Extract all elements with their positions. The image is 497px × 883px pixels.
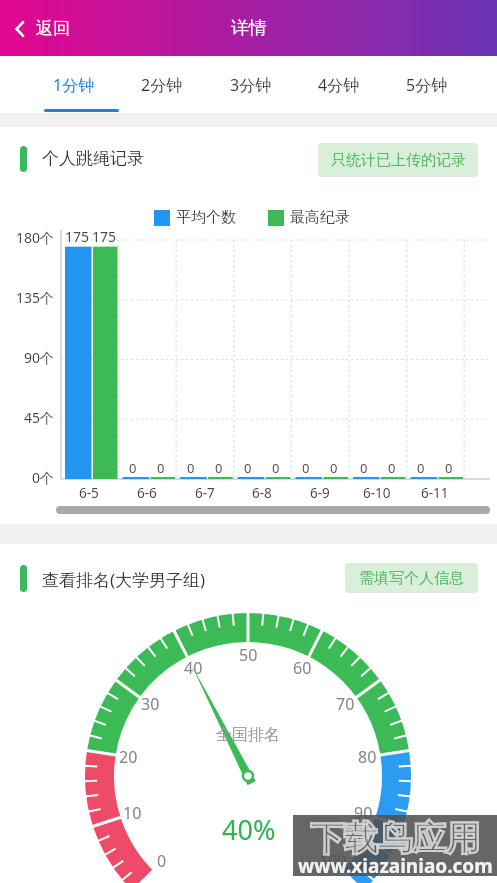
staticText: 3分钟 — [230, 74, 272, 96]
staticText: 4分钟 — [318, 74, 360, 96]
staticText: 详情 — [231, 17, 267, 40]
staticText: 80 — [358, 746, 377, 768]
staticText: 平均个数 — [176, 208, 236, 227]
staticText: 0 — [187, 459, 195, 477]
staticText: 2分钟 — [141, 74, 183, 96]
staticText: 180个 — [16, 228, 55, 247]
staticText: 只统计已上传的记录 — [331, 151, 466, 170]
button[interactable]: 2分钟 — [141, 74, 183, 96]
staticText: 0 — [417, 459, 425, 477]
staticText: 6-6 — [137, 484, 157, 502]
button[interactable]: 返回 — [12, 18, 70, 39]
staticText: 0 — [445, 459, 453, 477]
staticText: 最高纪录 — [290, 208, 350, 227]
staticText: 135个 — [16, 288, 55, 307]
button[interactable]: 1分钟 — [53, 74, 95, 96]
staticText: 0 — [157, 459, 165, 477]
staticText: 0 — [388, 459, 396, 477]
button[interactable]: 需填写个人信息 — [345, 563, 478, 593]
staticText: 10 — [123, 802, 142, 824]
staticText: 175 — [65, 227, 90, 246]
button[interactable]: 3分钟 — [230, 74, 272, 96]
staticText: 20 — [119, 746, 138, 768]
staticText: 0 — [360, 459, 368, 477]
staticText: 返回 — [36, 18, 70, 39]
staticText: 0 — [330, 459, 338, 477]
staticText: 0 — [244, 459, 252, 477]
staticText: 90个 — [24, 348, 55, 367]
staticText: 下载鸟应用 — [310, 817, 480, 859]
staticText: 100 — [319, 850, 347, 872]
staticText: 个人跳绳记录 — [42, 148, 144, 169]
staticText: 60 — [293, 657, 312, 679]
staticText: 90 — [354, 802, 373, 824]
staticText: 0 — [302, 459, 310, 477]
staticText: 0 — [157, 850, 167, 872]
staticText: 需填写个人信息 — [359, 569, 464, 588]
staticText: 0 — [272, 459, 280, 477]
staticText: 175 — [92, 227, 117, 246]
staticText: 0个 — [32, 468, 55, 487]
staticText: 50 — [239, 644, 258, 666]
staticText: 30 — [141, 693, 160, 715]
staticText: 6-7 — [195, 484, 215, 502]
staticText: www.xiazainiao.com — [298, 853, 493, 876]
staticText: 6-10 — [363, 484, 391, 502]
staticText: 全国排名 — [216, 725, 280, 745]
staticText: 45个 — [24, 408, 55, 427]
button[interactable]: 只统计已上传的记录 — [318, 143, 478, 177]
staticText: 6-8 — [252, 484, 272, 502]
staticText: 6-11 — [421, 484, 449, 502]
button[interactable]: 4分钟 — [318, 74, 360, 96]
staticText: 1分钟 — [53, 74, 95, 96]
staticText: 6-9 — [310, 484, 330, 502]
staticText: 40% — [222, 811, 276, 845]
staticText: 70 — [336, 693, 355, 715]
staticText: 5分钟 — [406, 74, 448, 96]
button[interactable]: 5分钟 — [406, 74, 448, 96]
staticText: 查看排名(大学男子组) — [42, 568, 206, 591]
staticText: 0 — [215, 459, 223, 477]
staticText: 6-5 — [79, 484, 99, 502]
staticText: 0 — [129, 459, 137, 477]
staticText: 40 — [184, 657, 203, 679]
